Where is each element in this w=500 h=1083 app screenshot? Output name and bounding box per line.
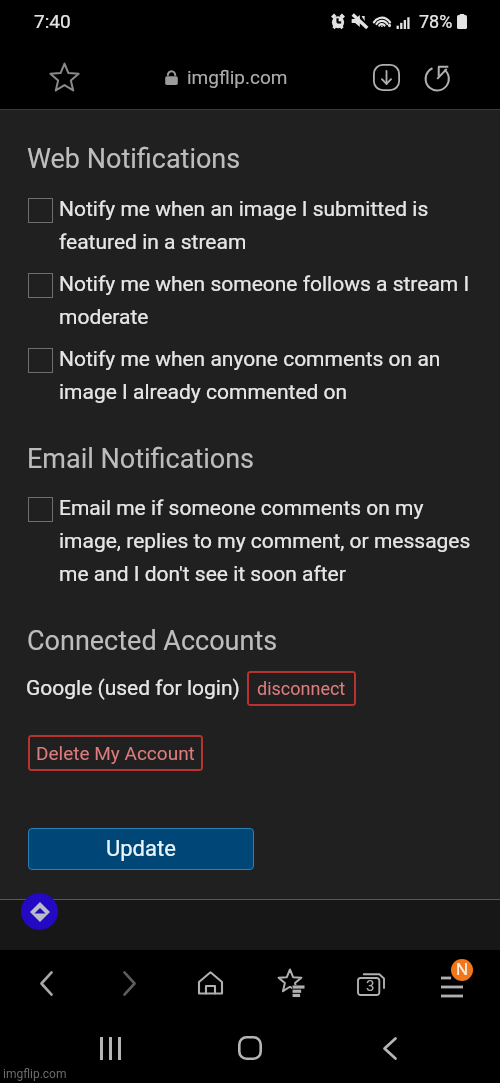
button[interactable]: Assistant (21, 893, 58, 930)
staticText: Web Notifications (27, 143, 241, 175)
button[interactable]: Notify me when someone follows a stream … (28, 273, 474, 330)
button[interactable]: Back (370, 1028, 410, 1068)
staticText: 3 (366, 977, 375, 995)
button[interactable]: Back (24, 961, 68, 1005)
button[interactable]: Home (230, 1028, 270, 1068)
button[interactable]: Notify me when anyone comments on an ima… (28, 348, 474, 405)
staticText: 7:40 (34, 10, 71, 32)
button[interactable]: Bookmarks (269, 961, 313, 1005)
button[interactable]: Menu (430, 954, 476, 1000)
staticText: Notify me when anyone comments on an ima… (59, 347, 472, 404)
button[interactable]: Update (28, 828, 254, 870)
button[interactable]: Recents (90, 1028, 130, 1068)
staticText: Email Notifications (27, 443, 255, 475)
staticText: Update (106, 836, 176, 862)
button[interactable]: Notify me when an image I submitted is f… (28, 198, 474, 255)
button[interactable]: Email me if someone comments on my image… (28, 497, 481, 587)
staticText: Delete My Account (36, 742, 195, 764)
staticText: disconnect (257, 678, 346, 699)
staticText: Email me if someone comments on my image… (59, 496, 479, 586)
staticText: N (456, 959, 469, 979)
staticText: Google (used for login) (26, 676, 240, 701)
staticText: imgflip.com (3, 1067, 67, 1081)
button[interactable]: Download (366, 57, 406, 97)
staticText: imgflip.com (187, 66, 288, 88)
button[interactable]: Reload (417, 57, 457, 97)
staticText: Connected Accounts (27, 625, 278, 657)
staticText: 78% (419, 11, 453, 32)
staticText: Notify me when an image I submitted is f… (59, 197, 472, 254)
button[interactable]: disconnect (247, 671, 356, 706)
button[interactable]: Bookmark (44, 57, 84, 97)
button[interactable]: Tabs (349, 961, 393, 1005)
button[interactable]: Forward (107, 961, 151, 1005)
button[interactable]: Home (188, 961, 232, 1005)
staticText: Notify me when someone follows a stream … (59, 272, 472, 329)
button[interactable]: Delete My Account (28, 735, 203, 771)
